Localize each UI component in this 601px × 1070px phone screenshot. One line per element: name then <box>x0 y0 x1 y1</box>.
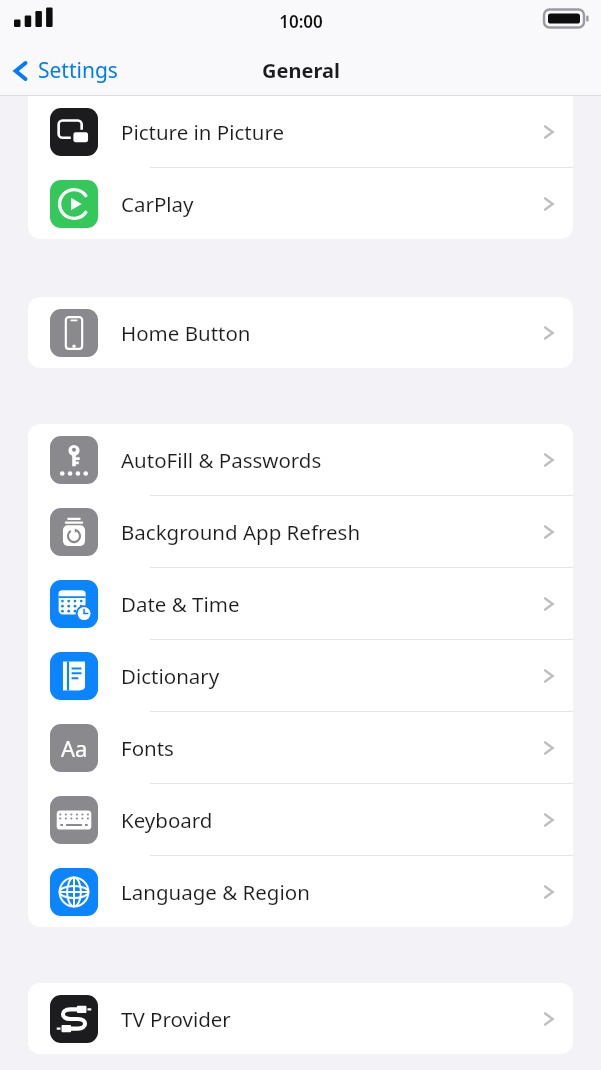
button[interactable]: Picture in Picture <box>28 96 573 167</box>
button[interactable]: Date & Time <box>28 568 573 639</box>
staticText: 10:00 <box>279 10 323 33</box>
button[interactable]: Background App Refresh <box>28 496 573 567</box>
staticText: Picture in Picture <box>121 118 543 146</box>
button[interactable]: Language & Region <box>28 856 573 927</box>
button[interactable]: AutoFill & Passwords <box>28 424 573 495</box>
button[interactable]: Aa <box>28 712 573 783</box>
staticText: General <box>262 57 340 84</box>
button[interactable]: Home Button <box>28 297 573 368</box>
button[interactable]: Keyboard <box>28 784 573 855</box>
button[interactable]: Dictionary <box>28 640 573 711</box>
staticText: Dictionary <box>121 662 543 690</box>
button[interactable]: TV Provider <box>28 983 573 1054</box>
staticText: Background App Refresh <box>121 518 543 546</box>
staticText: Keyboard <box>121 806 543 834</box>
staticText: Date & Time <box>121 590 543 618</box>
button[interactable]: Back to Settings <box>0 50 128 91</box>
staticText: Home Button <box>121 319 543 347</box>
button[interactable]: CarPlay <box>28 168 573 239</box>
staticText: AutoFill & Passwords <box>121 446 543 474</box>
staticText: Settings <box>38 56 118 85</box>
staticText: TV Provider <box>121 1005 543 1033</box>
staticText: CarPlay <box>121 190 543 218</box>
staticText: Aa <box>61 733 88 763</box>
staticText: Language & Region <box>121 878 543 906</box>
staticText: Fonts <box>121 734 543 762</box>
